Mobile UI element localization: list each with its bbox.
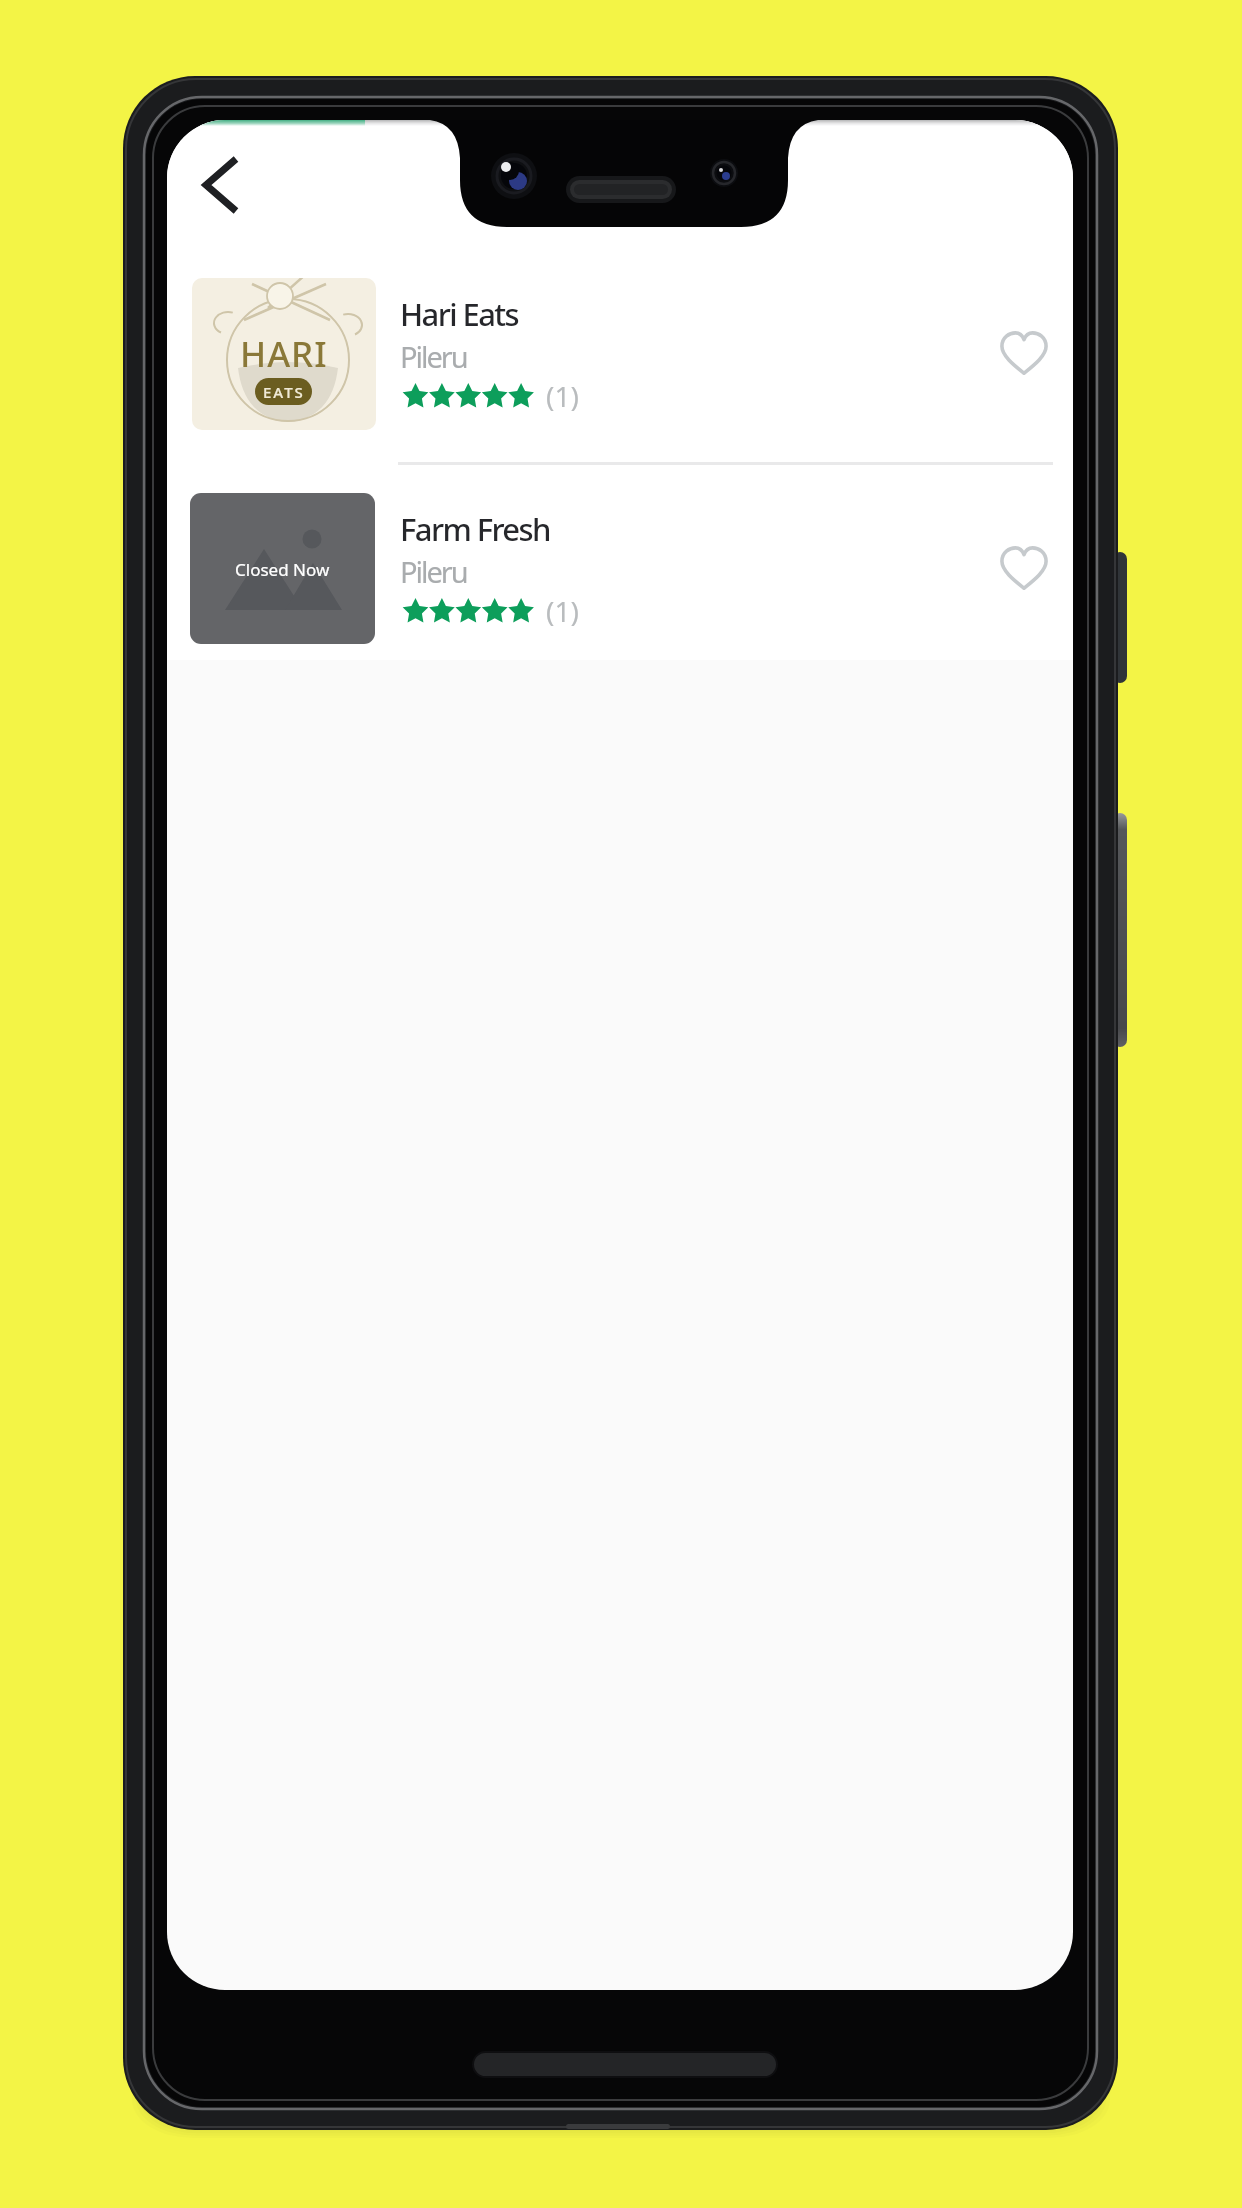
staticText: EATS bbox=[263, 382, 305, 402]
staticText: HARI bbox=[240, 330, 328, 372]
staticText: Hari Eats bbox=[400, 293, 519, 335]
button[interactable] bbox=[167, 268, 1073, 440]
button[interactable] bbox=[990, 536, 1058, 604]
button[interactable] bbox=[990, 321, 1058, 389]
button[interactable] bbox=[182, 151, 260, 229]
staticText: Farm Fresh bbox=[400, 508, 550, 550]
button[interactable] bbox=[167, 483, 1073, 655]
staticText: Pileru bbox=[400, 337, 467, 376]
staticText: Pileru bbox=[400, 552, 467, 591]
staticText: Closed Now bbox=[235, 558, 330, 581]
staticText: (1) bbox=[546, 377, 579, 415]
staticText: (1) bbox=[546, 592, 579, 630]
